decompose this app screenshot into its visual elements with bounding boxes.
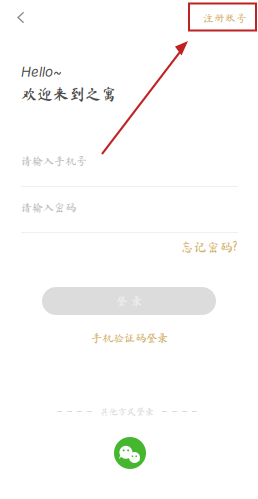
staticText: 忘记密码? — [181, 241, 237, 253]
button[interactable]: 忘记密码? — [167, 238, 237, 256]
staticText: 请输入手机号 — [21, 155, 87, 167]
staticText: 其他方式登录 — [100, 407, 154, 416]
button[interactable]: 登 录 — [42, 287, 216, 315]
staticText: Hello~ — [21, 64, 62, 80]
staticText: 登 录 — [116, 295, 142, 307]
staticText: 请输入密码 — [21, 202, 76, 213]
staticText: 注册账号 — [203, 13, 247, 23]
staticText: 手机验证码登录 — [91, 332, 168, 344]
staticText: 欢迎来到之寓 — [21, 86, 117, 102]
button[interactable]: 手机验证码登录 — [79, 329, 179, 347]
button[interactable]: Back — [5, 1, 37, 33]
button[interactable]: Sign in with WeChat — [114, 437, 146, 469]
button[interactable]: 注册账号 — [196, 6, 254, 30]
